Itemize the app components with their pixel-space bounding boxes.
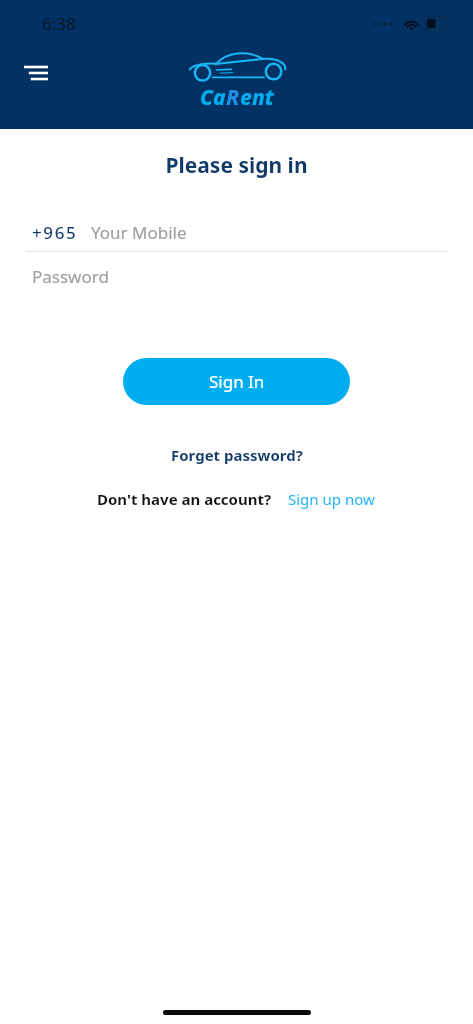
button[interactable]: Sign In xyxy=(123,358,350,405)
staticText: +965 xyxy=(32,221,78,244)
button[interactable]: Menu xyxy=(14,56,58,90)
staticText: 6:38 xyxy=(42,12,76,35)
staticText: Password xyxy=(32,265,109,288)
staticText: Sign up now xyxy=(288,489,375,509)
button[interactable]: Forget password? xyxy=(161,441,313,469)
staticText: Your Mobile xyxy=(91,221,187,244)
button[interactable]: +965 xyxy=(0,213,473,251)
button[interactable]: Password xyxy=(0,252,473,300)
staticText: Forget password? xyxy=(171,445,303,465)
staticText: Don't have an account? xyxy=(97,489,272,509)
staticText: Ca xyxy=(200,83,226,112)
staticText: ent xyxy=(240,83,274,112)
staticText: Sign In xyxy=(209,370,265,393)
button[interactable]: Sign up now xyxy=(286,485,377,513)
staticText: Please sign in xyxy=(0,151,473,180)
staticText: R xyxy=(226,83,240,112)
